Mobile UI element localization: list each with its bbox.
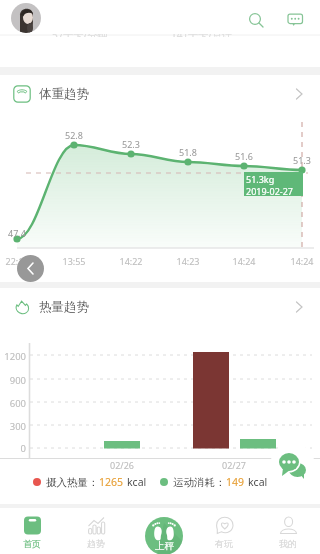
button[interactable]: 上秤 bbox=[145, 517, 183, 554]
staticText: 热量趋势 bbox=[39, 299, 89, 315]
staticText: 0 bbox=[0, 442, 26, 455]
staticText: 900 bbox=[0, 374, 26, 387]
button[interactable]: 有玩 bbox=[192, 508, 256, 554]
staticText: 14:24 bbox=[286, 255, 318, 267]
button[interactable]: Previous bbox=[17, 255, 44, 282]
button[interactable]: Profile bbox=[11, 3, 41, 33]
staticText: 首页 bbox=[23, 538, 41, 549]
staticText: 51.3kg bbox=[246, 173, 275, 185]
button[interactable]: Messages bbox=[282, 6, 308, 32]
staticText: 运动消耗： bbox=[173, 476, 226, 489]
button[interactable]: Chat bbox=[270, 443, 315, 488]
staticText: 600 bbox=[0, 397, 26, 410]
staticText: 上秤 bbox=[155, 540, 174, 552]
staticText: 02/26 bbox=[97, 459, 147, 471]
staticText: 57千卡/分钟 bbox=[52, 34, 108, 37]
staticText: 1200 bbox=[0, 350, 26, 363]
staticText: 02/27 bbox=[209, 459, 259, 471]
staticText: 14:23 bbox=[172, 255, 204, 267]
staticText: 52.3 bbox=[117, 138, 145, 150]
button[interactable]: Search bbox=[242, 6, 268, 32]
staticText: kcal bbox=[127, 475, 147, 489]
button[interactable]: 热量趋势 bbox=[0, 288, 320, 326]
staticText: 141千卡/总计 bbox=[171, 34, 232, 37]
staticText: 体重趋势 bbox=[39, 86, 89, 102]
staticText: 13:55 bbox=[58, 255, 90, 267]
staticText: kcal bbox=[248, 475, 268, 489]
staticText: 47.4 bbox=[3, 227, 31, 239]
staticText: 52.8 bbox=[60, 129, 88, 141]
button[interactable]: 我的 bbox=[256, 508, 320, 554]
staticText: 趋势 bbox=[87, 538, 105, 549]
staticText: 14:24 bbox=[228, 255, 260, 267]
staticText: 22:12 bbox=[1, 255, 33, 267]
staticText: 51.3 bbox=[288, 154, 316, 166]
staticText: 51.6 bbox=[230, 150, 258, 162]
staticText: 51.8 bbox=[174, 146, 202, 158]
button[interactable]: 体重趋势 bbox=[0, 75, 320, 113]
button[interactable]: 首页 bbox=[0, 508, 64, 554]
staticText: 149 bbox=[226, 475, 245, 489]
staticText: 我的 bbox=[279, 538, 297, 549]
staticText: 2019-02-27 bbox=[246, 185, 293, 196]
button[interactable]: 趋势 bbox=[64, 508, 128, 554]
staticText: 14:22 bbox=[115, 255, 147, 267]
staticText: 有玩 bbox=[215, 538, 233, 549]
staticText: 300 bbox=[0, 420, 26, 433]
staticText: 摄入热量： bbox=[46, 476, 99, 489]
staticText: 1265 bbox=[99, 475, 124, 489]
